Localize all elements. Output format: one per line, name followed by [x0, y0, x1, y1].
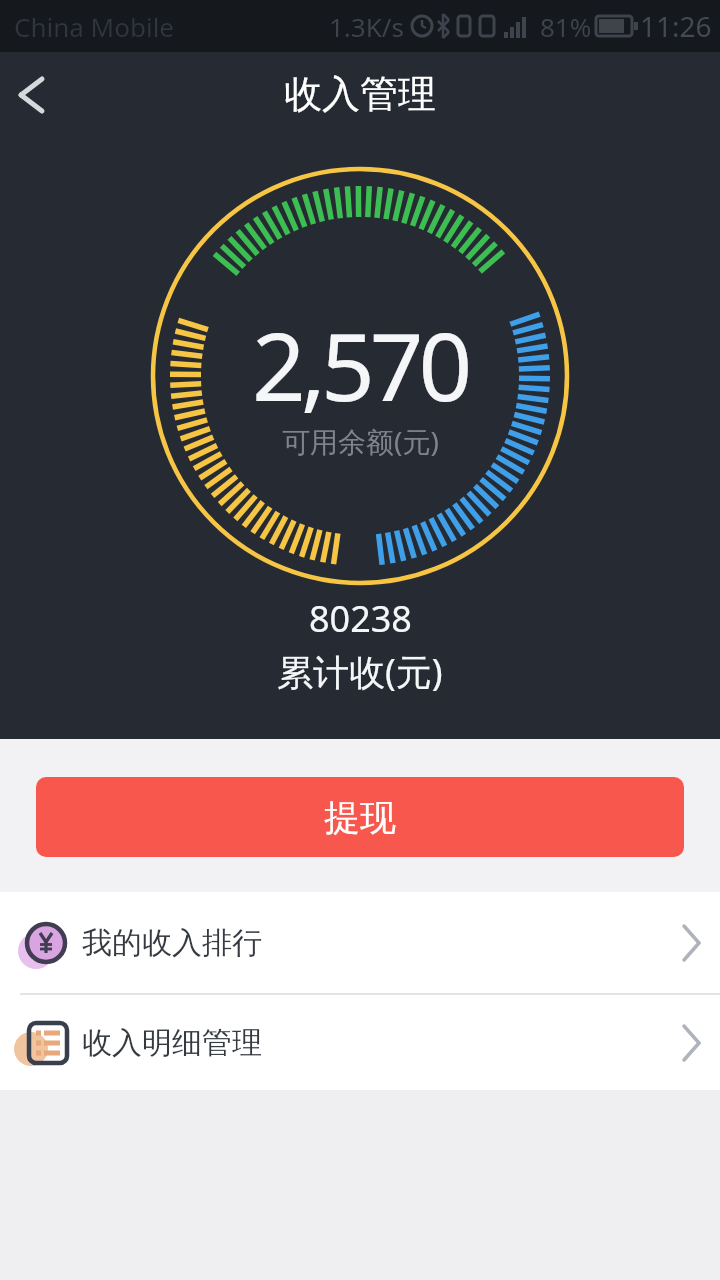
- button[interactable]: 提现: [36, 777, 684, 857]
- button[interactable]: 我的收入排行: [0, 892, 720, 993]
- staticText: 81%: [540, 9, 592, 44]
- staticText: 累计收(元): [277, 647, 443, 696]
- staticText: 收入明细管理: [82, 1024, 262, 1062]
- staticText: 我的收入排行: [82, 924, 262, 962]
- staticText: 1.3K/s: [329, 9, 404, 44]
- staticText: China Mobile: [14, 9, 175, 44]
- staticText: 2,570: [252, 301, 468, 429]
- staticText: 提现: [324, 795, 396, 840]
- staticText: 收入管理: [284, 70, 436, 118]
- button[interactable]: 收入明细管理: [0, 995, 720, 1090]
- button[interactable]: [0, 62, 64, 126]
- staticText: 80238: [309, 594, 412, 643]
- staticText: 可用余额(元): [282, 422, 439, 460]
- staticText: 11:26: [640, 7, 712, 45]
